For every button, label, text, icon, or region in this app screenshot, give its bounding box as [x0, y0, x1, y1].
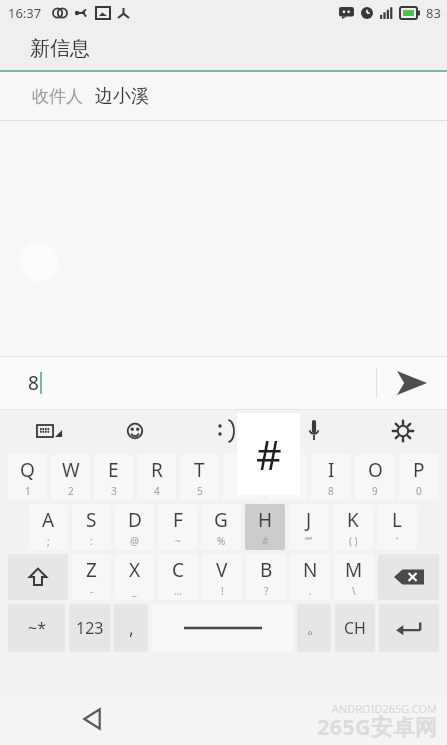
- button[interactable]: B: [246, 554, 286, 600]
- staticText: 8: [328, 484, 334, 498]
- staticText: !: [221, 584, 224, 598]
- button[interactable]: X: [115, 554, 154, 600]
- staticText: 16:37: [8, 4, 42, 22]
- button[interactable]: Emoticons: [180, 410, 269, 452]
- staticText: N: [303, 557, 318, 583]
- button[interactable]: M: [334, 554, 374, 600]
- button[interactable]: 8: [0, 357, 376, 409]
- button[interactable]: U: [267, 454, 307, 500]
- button[interactable]: F: [158, 504, 197, 550]
- staticText: 5: [197, 484, 203, 498]
- button[interactable]: Send: [377, 357, 447, 409]
- staticText: G: [214, 507, 228, 533]
- staticText: L: [392, 507, 402, 533]
- button[interactable]: N: [290, 554, 330, 600]
- staticText: S: [86, 507, 97, 533]
- staticText: #: [262, 534, 269, 548]
- staticText: B: [260, 557, 273, 583]
- staticText: %: [217, 534, 226, 548]
- button[interactable]: Z: [72, 554, 111, 600]
- button[interactable]: C: [158, 554, 198, 600]
- button[interactable]: 收件人: [0, 72, 447, 120]
- staticText: 2: [68, 484, 74, 498]
- staticText: P: [413, 457, 425, 483]
- staticText: M: [345, 557, 363, 583]
- button[interactable]: A: [29, 504, 68, 550]
- button[interactable]: Back: [70, 697, 114, 741]
- staticText: K: [347, 507, 359, 533]
- staticText: “”: [305, 534, 313, 548]
- staticText: ANDROID265G.COM: [331, 701, 437, 716]
- button[interactable]: O: [355, 454, 395, 500]
- button[interactable]: Settings: [358, 410, 447, 452]
- staticText: R: [151, 457, 163, 483]
- staticText: J: [306, 507, 312, 533]
- button[interactable]: J: [289, 504, 329, 550]
- button[interactable]: D: [115, 504, 154, 550]
- staticText: E: [108, 457, 119, 483]
- button[interactable]: Keyboard layout: [0, 410, 90, 452]
- staticText: -: [90, 584, 94, 598]
- staticText: I: [328, 457, 335, 483]
- button[interactable]: Y: [223, 454, 263, 500]
- button[interactable]: 123: [69, 604, 110, 652]
- staticText: 9: [372, 484, 378, 498]
- staticText: 123: [76, 617, 104, 639]
- staticText: ( ): [349, 534, 358, 548]
- staticText: CH: [344, 617, 366, 639]
- staticText: ': [396, 534, 399, 548]
- staticText: 边小溪: [95, 85, 149, 108]
- staticText: #: [256, 427, 282, 481]
- button[interactable]: L: [377, 504, 417, 550]
- staticText: W: [62, 457, 80, 483]
- staticText: 0: [416, 484, 422, 498]
- button[interactable]: 新信息: [0, 26, 447, 70]
- staticText: 265G安卓网: [317, 711, 437, 741]
- button[interactable]: Q: [8, 454, 47, 500]
- staticText: 6: [240, 484, 246, 498]
- button[interactable]: Backspace: [378, 554, 439, 600]
- staticText: D: [128, 507, 142, 533]
- staticText: T: [194, 457, 205, 483]
- staticText: _: [132, 584, 137, 598]
- button[interactable]: G: [201, 504, 241, 550]
- staticText: ,: [129, 616, 134, 641]
- staticText: 83: [426, 4, 441, 22]
- staticText: Q: [20, 457, 35, 483]
- button[interactable]: W: [51, 454, 90, 500]
- button[interactable]: CH: [335, 604, 375, 652]
- button[interactable]: V: [202, 554, 242, 600]
- staticText: A: [42, 507, 55, 533]
- staticText: H: [258, 507, 273, 533]
- button[interactable]: P: [399, 454, 439, 500]
- staticText: X: [129, 557, 141, 583]
- button[interactable]: H: [245, 504, 285, 550]
- staticText: 1: [25, 484, 31, 498]
- button[interactable]: Emoji: [90, 410, 180, 452]
- staticText: 3: [111, 484, 117, 498]
- staticText: V: [216, 557, 228, 583]
- staticText: O: [368, 457, 383, 483]
- staticText: ?: [264, 584, 269, 598]
- button[interactable]: 。: [297, 604, 331, 652]
- button[interactable]: E: [94, 454, 133, 500]
- button[interactable]: ~*: [8, 604, 65, 652]
- button[interactable]: R: [137, 454, 176, 500]
- button[interactable]: T: [180, 454, 219, 500]
- button[interactable]: ,: [114, 604, 148, 652]
- staticText: .: [309, 584, 312, 598]
- button[interactable]: I: [311, 454, 351, 500]
- button[interactable]: Shift: [8, 554, 68, 600]
- staticText: 8: [28, 370, 39, 396]
- button[interactable]: Voice input: [269, 410, 358, 452]
- staticText: 4: [154, 484, 160, 498]
- staticText: 收件人: [32, 86, 83, 107]
- staticText: C: [172, 557, 185, 583]
- staticText: ~: [175, 534, 181, 548]
- button[interactable]: S: [72, 504, 111, 550]
- button[interactable]: K: [333, 504, 373, 550]
- button[interactable]: Space: [152, 604, 293, 652]
- button[interactable]: Enter: [379, 604, 439, 652]
